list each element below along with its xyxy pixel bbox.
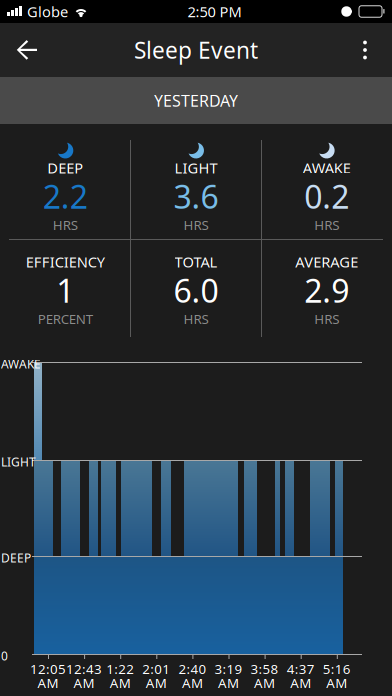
staticText: HRS [183,310,208,328]
staticText: LIGHT [1,454,36,470]
staticText: AM [110,674,131,692]
staticText: 3:19 [214,660,242,678]
staticText: 4:37 [287,660,315,678]
staticText: HRS [183,216,208,234]
staticText: AM [74,674,95,692]
staticText: AM [326,674,347,692]
staticText: 5:16 [323,660,351,678]
staticText: HRS [314,216,339,234]
staticText: AM [146,674,167,692]
staticText: 0 [1,648,8,664]
staticText: Sleep Event [134,35,258,65]
staticText: DEEP [47,158,83,177]
staticText: 3.6 [173,175,218,217]
button[interactable]: More options [338,23,392,77]
staticText: 2.9 [304,269,349,311]
staticText: AM [254,674,275,692]
staticText: HRS [53,216,78,234]
staticText: AM [182,674,203,692]
staticText: TOTAL [174,252,217,271]
staticText: 3:58 [251,660,279,678]
staticText: LIGHT [174,158,217,177]
staticText: PERCENT [38,310,93,328]
staticText: 1:22 [106,660,134,678]
button[interactable]: Back [0,23,54,77]
staticText: AM [37,674,58,692]
staticText: AM [290,674,311,692]
staticText: 2:40 [178,660,206,678]
staticText: Globe [27,2,68,21]
staticText: YESTERDAY [154,90,238,111]
staticText: 1 [56,269,74,311]
staticText: 0.2 [304,175,349,217]
staticText: AVERAGE [295,252,358,271]
staticText: HRS [314,310,339,328]
staticText: AWAKE [303,158,351,177]
staticText: 6.0 [173,269,218,311]
staticText: AWAKE [1,356,41,372]
staticText: 2:50 PM [187,2,241,21]
staticText: 12:05 [30,660,66,678]
staticText: DEEP [1,550,31,566]
staticText: AM [218,674,239,692]
staticText: 2:01 [142,660,170,678]
staticText: 2.2 [43,175,88,217]
staticText: 12:43 [66,660,102,678]
staticText: EFFICIENCY [26,252,105,271]
